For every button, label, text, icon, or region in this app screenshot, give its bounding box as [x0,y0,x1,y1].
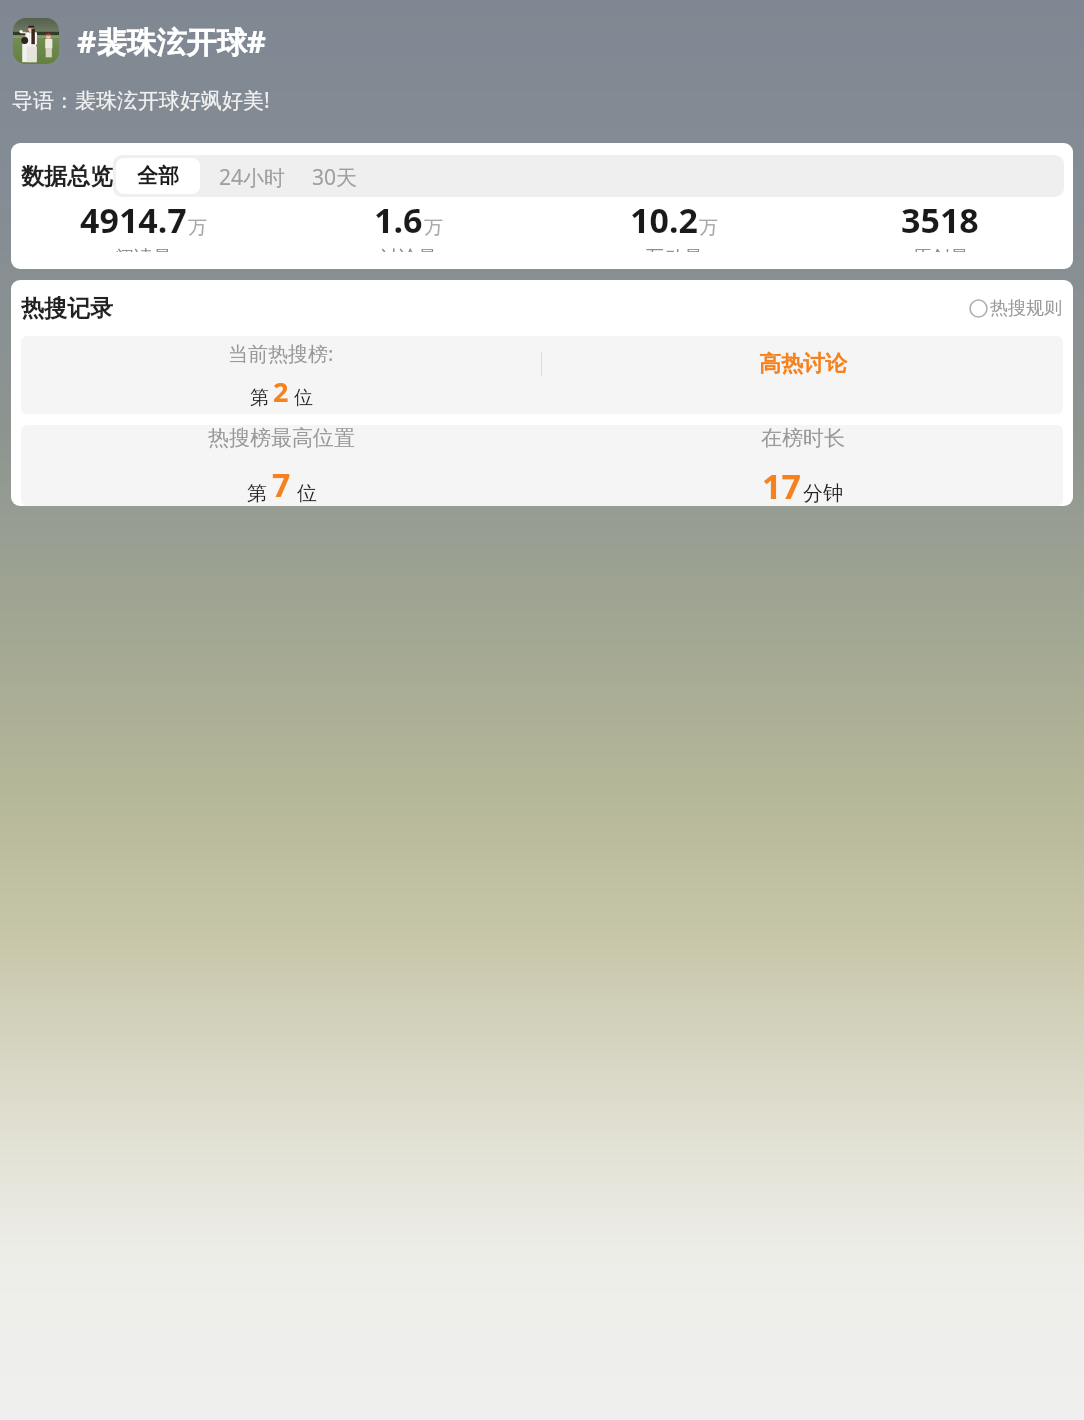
staticText: #裴珠泫开球# [77,21,266,62]
button[interactable]: 10.2 [541,197,807,252]
staticText: 位 [294,386,313,410]
button[interactable]: Topic avatar [13,18,59,64]
button[interactable]: 1.6 [276,197,541,252]
staticText: 热搜记录 [21,294,113,323]
staticText: 24小时 [219,163,286,189]
staticText: 讨论量 [380,246,437,252]
staticText: 10.2 [630,197,698,243]
staticText: 全部 [137,163,179,189]
staticText: 17 [762,463,801,506]
staticText: 3518 [901,197,979,243]
staticText: 万 [188,216,207,240]
staticText: 原创量 [912,246,969,252]
staticText: 30天 [312,163,358,189]
staticText: 热搜榜最高位置 [208,425,355,451]
staticText: 高热讨论 [759,350,847,378]
staticText: 分钟 [803,481,843,506]
button[interactable]: 4914.7 [11,197,276,252]
button[interactable]: 热搜榜最高位置 [21,425,1063,506]
staticText: 万 [699,216,718,240]
staticText: 热搜规则 [990,297,1062,320]
button[interactable]: 24小时 [203,155,302,197]
staticText: 阅读量 [115,246,172,252]
button[interactable]: 30天 [302,155,378,197]
staticText: 1.6 [374,197,423,243]
other: 热搜规则帮助 [969,299,988,318]
staticText: 位 [297,481,317,506]
staticText: 第 [247,481,267,506]
staticText: 当前热搜榜: [228,340,334,367]
staticText: 2 [273,373,289,410]
button[interactable]: 当前热搜榜: [21,336,1063,414]
button[interactable]: 全部 [116,158,200,194]
staticText: 第 [250,386,269,410]
staticText: 在榜时长 [761,425,845,451]
staticText: 导语：裴珠泫开球好飒好美! [12,86,270,115]
staticText: 数据总览 [21,162,113,191]
button[interactable]: 3518 [807,197,1073,252]
button[interactable]: 热搜规则帮助 [967,295,1064,322]
staticText: 互动量 [646,246,703,252]
staticText: 万 [424,216,443,240]
staticText: 4914.7 [80,197,187,243]
staticText: 7 [272,463,291,506]
